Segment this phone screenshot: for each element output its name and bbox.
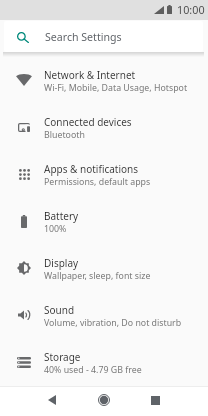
- button[interactable]: Network & Internet: [0, 57, 208, 104]
- button[interactable]: Display: [0, 245, 208, 292]
- staticText: Display: [44, 256, 79, 270]
- staticText: Storage: [44, 350, 81, 364]
- staticText: Connected devices: [44, 115, 132, 129]
- button[interactable]: Home: [88, 385, 120, 415]
- staticText: Wi-Fi, Mobile, Data Usage, Hotspot: [44, 82, 188, 94]
- staticText: 10:00: [177, 2, 205, 17]
- staticText: Wallpaper, sleep, font size: [44, 270, 151, 282]
- button[interactable]: Recents: [139, 385, 171, 415]
- button[interactable]: Storage: [0, 339, 208, 386]
- button[interactable]: Apps & notifications: [0, 151, 208, 198]
- staticText: Search Settings: [45, 30, 122, 44]
- button[interactable]: Back: [36, 385, 68, 415]
- staticText: Apps & notifications: [44, 162, 139, 176]
- staticText: Sound: [44, 303, 75, 317]
- button[interactable]: Connected devices: [0, 104, 208, 151]
- staticText: Volume, vibration, Do not disturb: [44, 317, 182, 329]
- button[interactable]: Search Settings: [4, 21, 203, 52]
- staticText: 40% used - 4.79 GB free: [44, 364, 142, 376]
- staticText: 100%: [44, 223, 67, 235]
- staticText: Bluetooth: [44, 129, 85, 141]
- button[interactable]: Sound: [0, 292, 208, 339]
- staticText: Permissions, default apps: [44, 176, 151, 188]
- staticText: Battery: [44, 209, 79, 223]
- button[interactable]: Battery: [0, 198, 208, 245]
- staticText: Network & Internet: [44, 68, 136, 82]
